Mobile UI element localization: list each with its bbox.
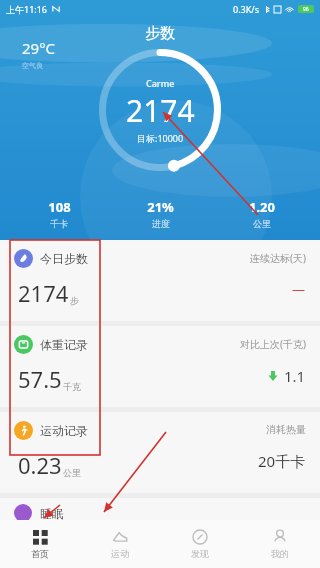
staticText: 108 [48, 198, 71, 216]
staticText: 目标:10000 [137, 132, 184, 144]
staticText: 公里 [253, 218, 271, 229]
staticText: 今日步数 [40, 251, 88, 266]
staticText: 1.20 [249, 198, 275, 216]
staticText: 运动记录 [40, 423, 88, 438]
button[interactable]: 今日步数 [0, 240, 320, 321]
button[interactable]: 我的 [240, 520, 320, 568]
staticText: 96 [303, 6, 309, 13]
staticText: 千卡 [50, 218, 68, 229]
staticText: 进度 [152, 218, 170, 229]
button[interactable]: 运动 [80, 520, 160, 568]
staticText: 步数 [145, 24, 175, 43]
staticText: 1.1 [284, 366, 306, 386]
staticText: 体重记录 [40, 337, 88, 352]
button[interactable]: 运动记录 [0, 412, 320, 493]
staticText: 2174 [18, 278, 69, 308]
staticText: 消耗热量 [266, 423, 306, 436]
staticText: 2174 [126, 90, 195, 131]
staticText: 千克 [63, 381, 81, 392]
button[interactable]: 首页 [0, 520, 80, 568]
staticText: 0.23 [18, 450, 62, 480]
button[interactable]: 发现 [160, 520, 240, 568]
staticText: 上午11:16 [6, 3, 48, 15]
staticText: 空气良 [22, 61, 43, 70]
staticText: 对比上次(千克) [240, 337, 306, 351]
staticText: 公里 [63, 467, 81, 478]
button[interactable]: 体重记录 [0, 326, 320, 407]
staticText: 发现 [191, 548, 209, 559]
staticText: 20千卡 [258, 451, 306, 471]
staticText: — [292, 280, 306, 298]
staticText: 57.5 [18, 364, 62, 394]
staticText: 连续达标(天) [250, 251, 306, 265]
staticText: 21% [147, 198, 174, 216]
staticText: 睡眠 [40, 506, 64, 521]
staticText: 我的 [271, 548, 289, 559]
staticText: 29°C [22, 38, 56, 58]
staticText: 步 [70, 295, 79, 306]
staticText: 运动 [111, 548, 129, 559]
staticText: Carme [146, 77, 175, 89]
staticText: 0.3K/s [233, 3, 259, 15]
staticText: 首页 [31, 548, 49, 559]
